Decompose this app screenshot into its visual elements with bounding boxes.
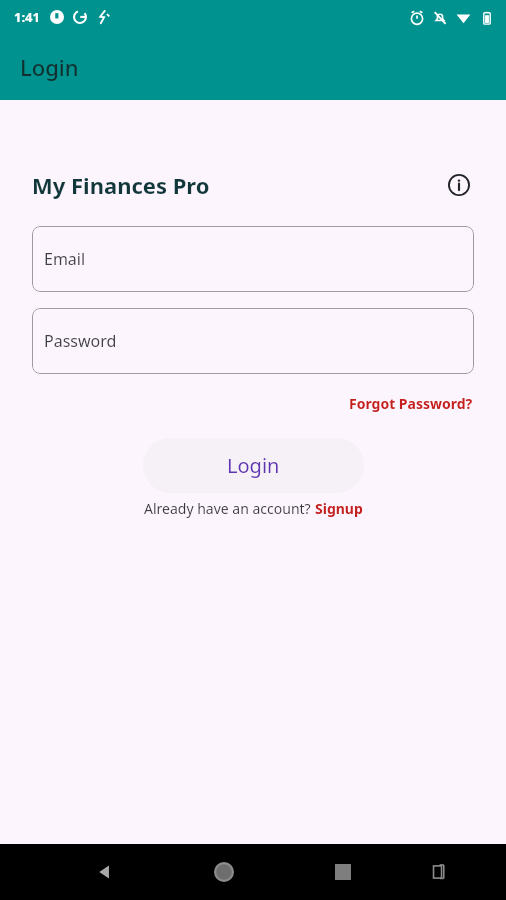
button[interactable]: Recent apps <box>322 851 364 893</box>
button[interactable]: Forgot Password? <box>347 392 475 415</box>
staticText: 1:41 <box>14 8 40 26</box>
button[interactable]: Login <box>143 438 364 493</box>
staticText: Email <box>44 248 86 270</box>
button[interactable]: Password <box>32 308 474 374</box>
button[interactable]: Email <box>32 226 474 292</box>
staticText: Login <box>227 452 280 479</box>
staticText: Forgot Password? <box>349 394 473 413</box>
staticText: My Finances Pro <box>32 170 210 200</box>
staticText: Login <box>20 52 79 82</box>
button[interactable]: Signup <box>315 499 363 518</box>
button[interactable]: Rotate screen <box>418 852 458 892</box>
button[interactable]: Information <box>442 168 476 202</box>
button[interactable]: Home <box>203 851 245 893</box>
staticText: Signup <box>315 499 363 518</box>
button[interactable]: Back <box>84 851 126 893</box>
staticText: Already have an account? <box>144 499 315 518</box>
staticText: Password <box>44 330 117 352</box>
